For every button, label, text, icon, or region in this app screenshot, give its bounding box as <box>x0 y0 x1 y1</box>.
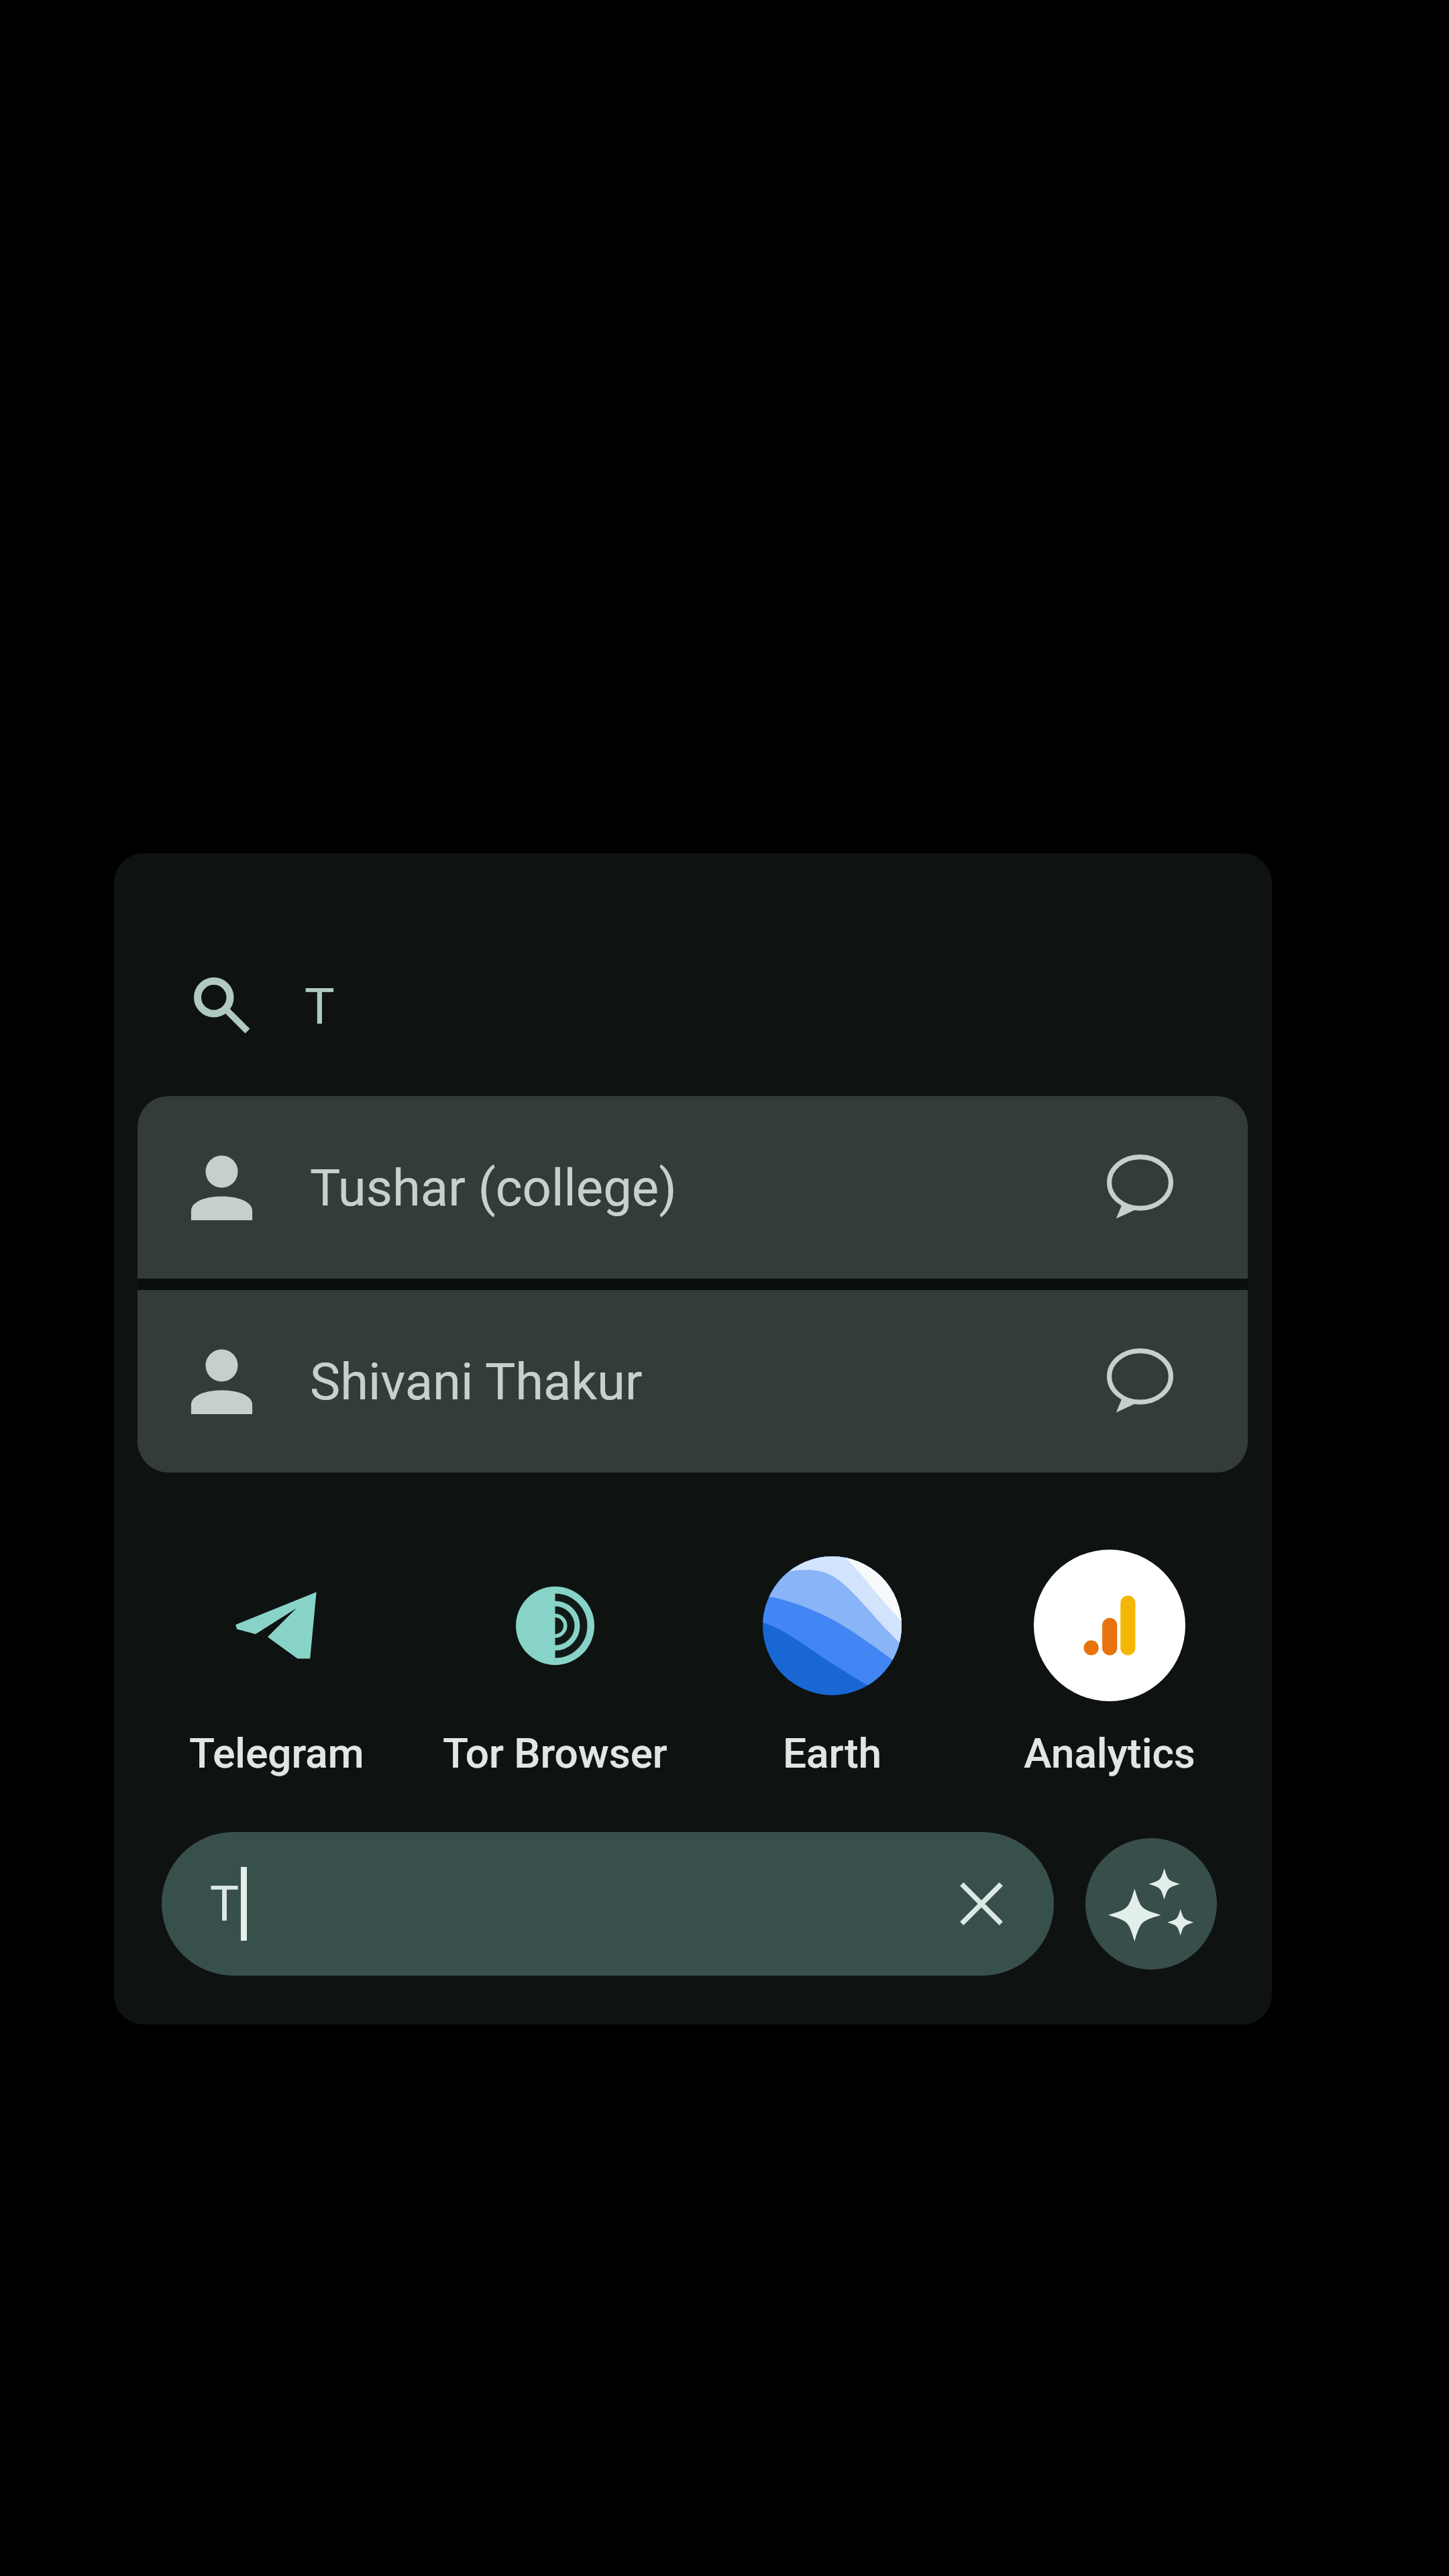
button[interactable]: Earth <box>698 1544 966 1746</box>
button[interactable]: Tor Browser <box>421 1544 689 1746</box>
staticText: Shivani Thakur <box>310 1352 643 1411</box>
button[interactable]: AI assistant <box>1085 1838 1217 1970</box>
staticText: T <box>305 977 335 1036</box>
button[interactable]: T <box>162 1832 1054 1976</box>
button[interactable]: Shivani Thakur <box>138 1290 1248 1472</box>
staticText: T <box>210 1876 239 1932</box>
button[interactable]: Telegram <box>142 1544 411 1746</box>
staticText: Tor Browser <box>443 1729 667 1778</box>
button[interactable]: Message Tushar (college) <box>1089 1137 1190 1238</box>
staticText: Analytics <box>1024 1729 1195 1778</box>
button[interactable]: T <box>114 937 1272 1071</box>
staticText: Telegram <box>189 1729 364 1778</box>
button[interactable]: Tushar (college) <box>138 1096 1248 1279</box>
staticText: Tushar (college) <box>310 1158 677 1218</box>
button[interactable]: Analytics <box>975 1544 1244 1746</box>
staticText: Earth <box>783 1729 881 1778</box>
button[interactable]: Message Shivani Thakur <box>1089 1331 1190 1432</box>
button[interactable]: Clear search text <box>931 1854 1032 1954</box>
